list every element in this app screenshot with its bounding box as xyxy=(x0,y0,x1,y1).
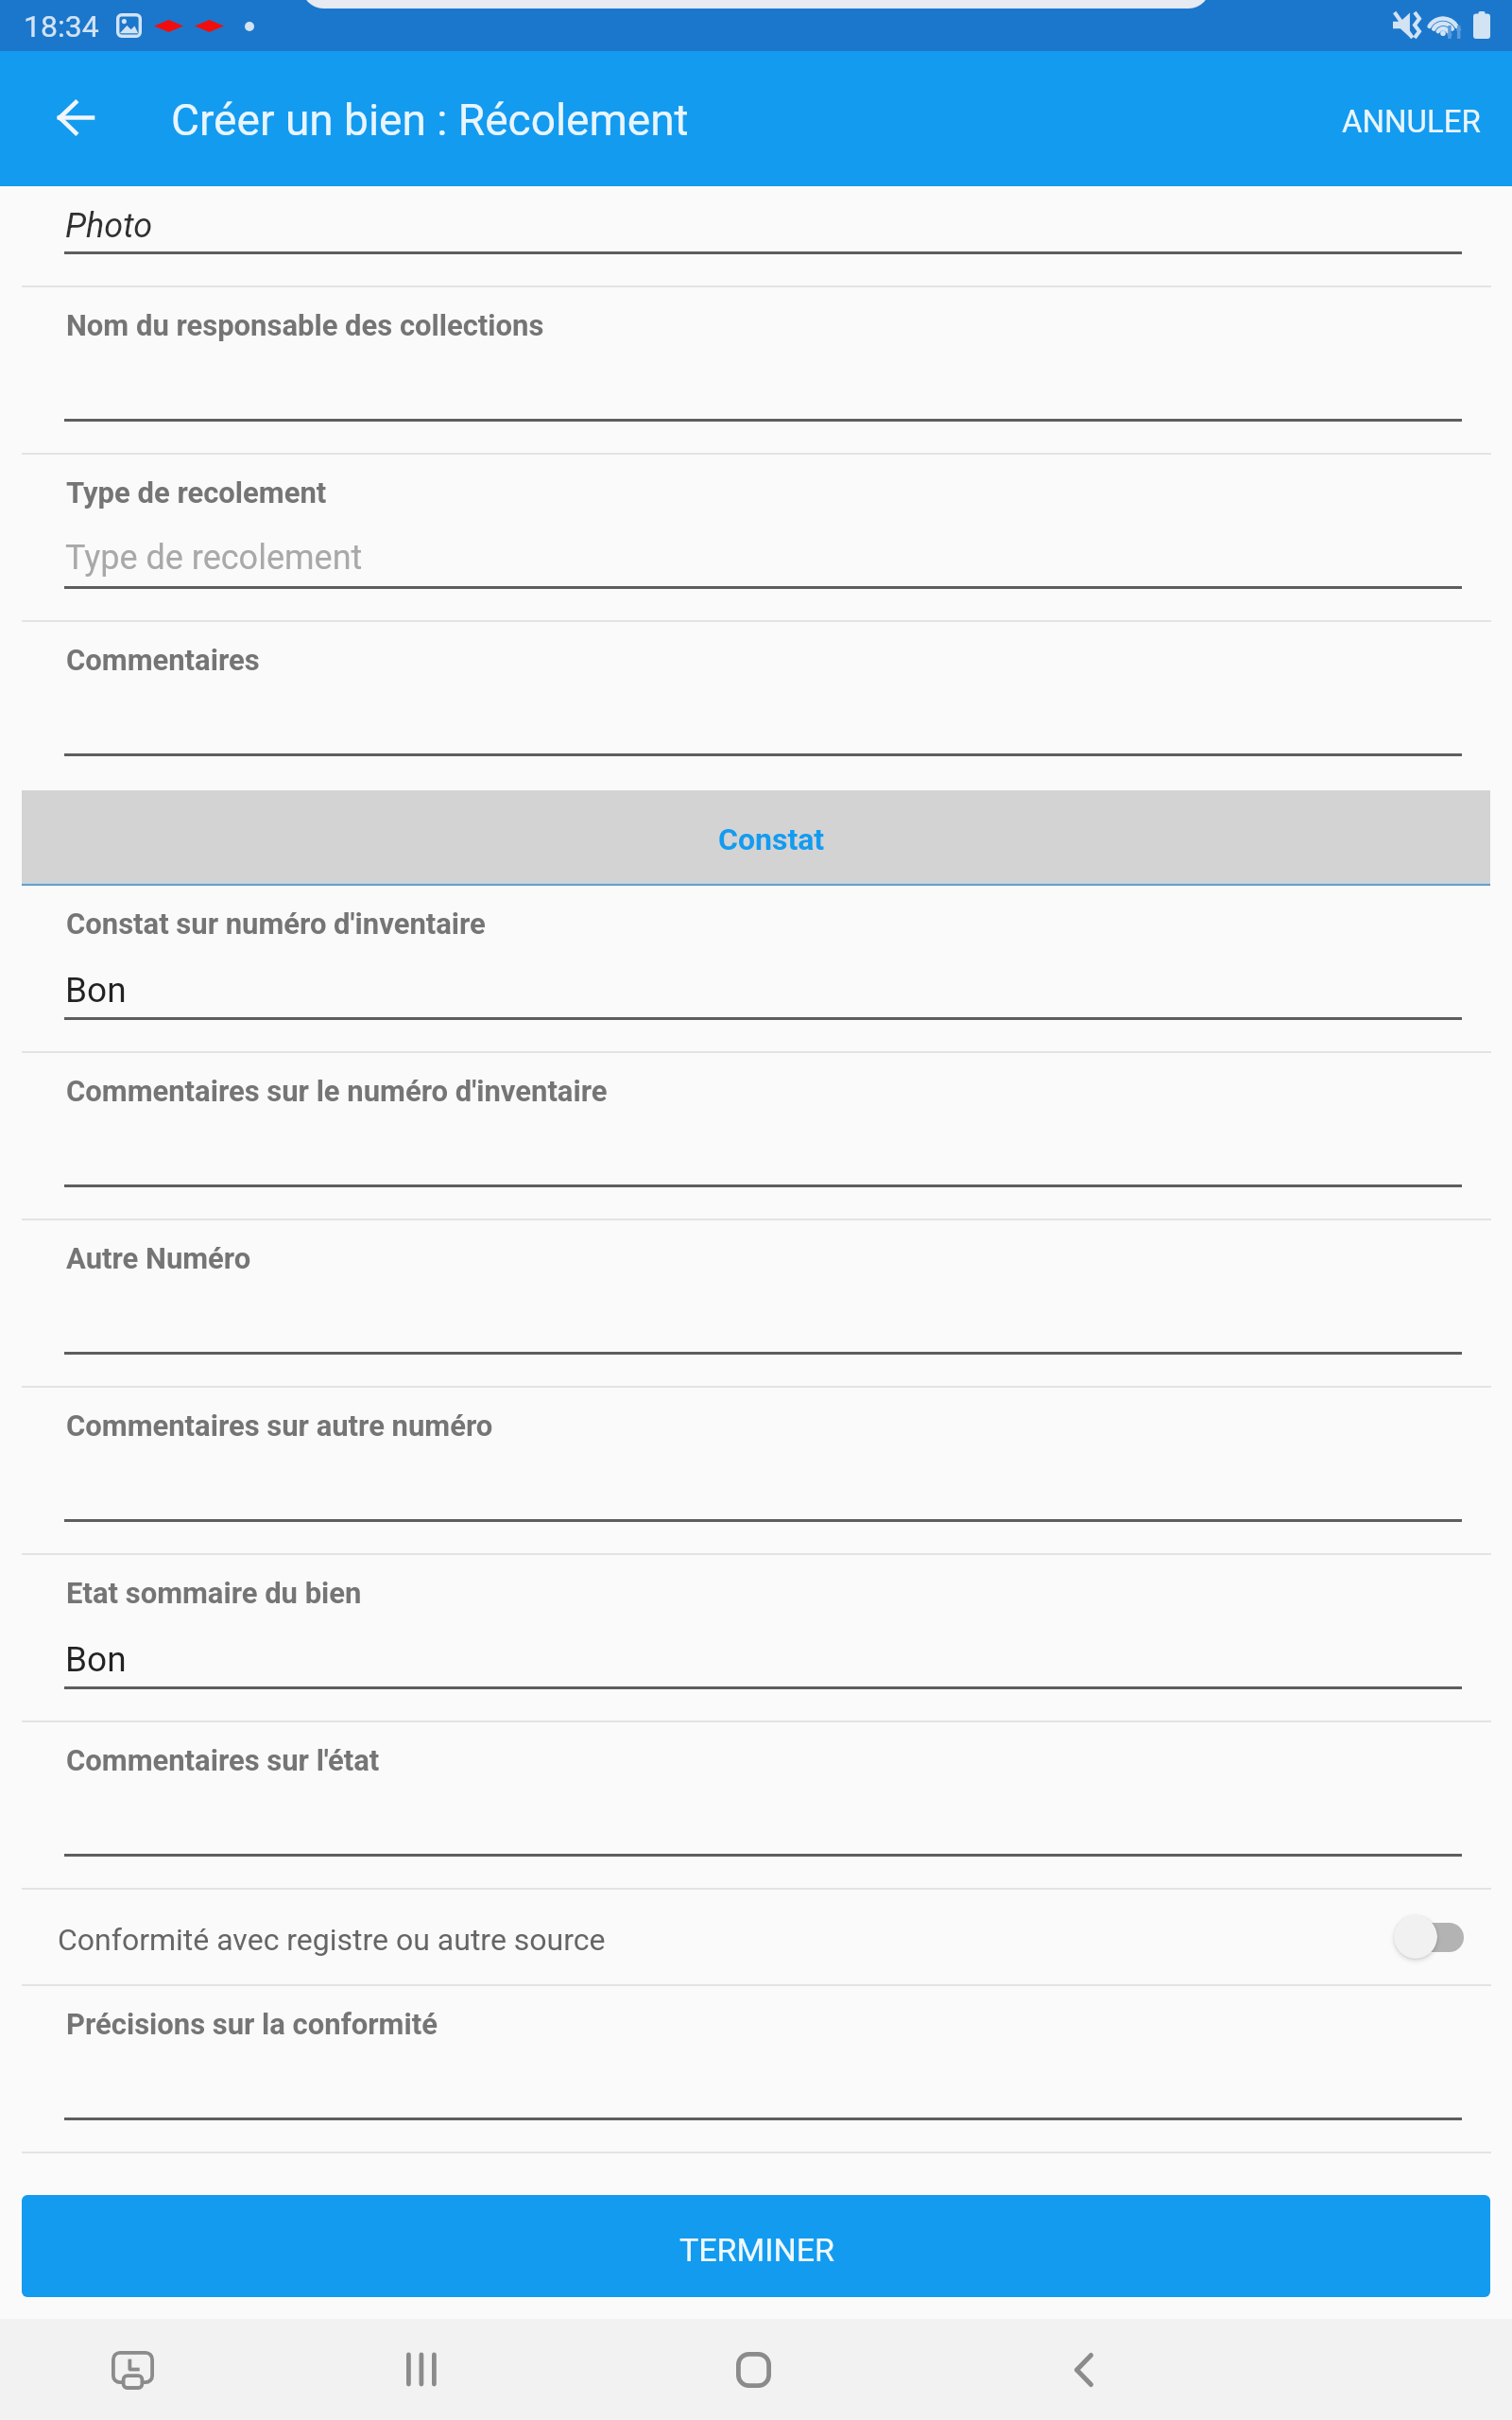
button[interactable]: Screenshot xyxy=(47,2319,217,2420)
staticText: Etat sommaire du bien xyxy=(66,1576,362,1610)
button[interactable]: Etat sommaire du bien xyxy=(0,1554,1512,1721)
staticText: TERMINER xyxy=(679,2231,835,2269)
staticText: Autre Numéro xyxy=(66,1241,251,1275)
button[interactable]: Constat xyxy=(22,790,1490,883)
button[interactable]: Back xyxy=(999,2319,1169,2420)
button[interactable]: Commentaires sur autre numéro xyxy=(0,1387,1512,1554)
button[interactable]: Commentaires sur le numéro d'inventaire xyxy=(0,1052,1512,1219)
staticText: Constat xyxy=(718,821,825,857)
staticText: Créer un bien : Récolement xyxy=(171,95,689,146)
staticText: Bon xyxy=(65,1639,127,1680)
button[interactable]: Type de recolement xyxy=(0,454,1512,621)
button[interactable]: Home xyxy=(668,2319,838,2420)
staticText: Photo xyxy=(65,206,153,246)
button[interactable]: Nom du responsable des collections xyxy=(0,286,1512,454)
staticText: Commentaires sur l'état xyxy=(66,1743,380,1777)
staticText: Type de recolement xyxy=(65,538,363,578)
staticText: 18:34 xyxy=(24,9,99,44)
staticText: Bon xyxy=(65,970,127,1011)
button[interactable]: Recent apps xyxy=(336,2319,507,2420)
staticText: ANNULER xyxy=(1342,103,1481,140)
button[interactable]: Constat sur numéro d'inventaire xyxy=(0,886,1512,1052)
button[interactable]: TERMINER xyxy=(22,2195,1490,2297)
button[interactable]: Photo xyxy=(0,186,1512,286)
button[interactable]: ANNULER xyxy=(1314,87,1484,149)
button[interactable]: Précisions sur la conformité xyxy=(0,1985,1512,2152)
button[interactable]: Autre Numéro xyxy=(0,1219,1512,1387)
button[interactable]: Conformité avec registre ou autre source xyxy=(0,1889,1512,1985)
staticText: Constat sur numéro d'inventaire xyxy=(66,907,486,941)
staticText: Conformité avec registre ou autre source xyxy=(58,1922,606,1958)
button[interactable]: Commentaires xyxy=(0,621,1512,790)
staticText: Commentaires sur le numéro d'inventaire xyxy=(66,1074,608,1108)
staticText: Type de recolement xyxy=(66,475,327,510)
staticText: Précisions sur la conformité xyxy=(66,2007,438,2041)
button[interactable]: Back xyxy=(32,75,117,160)
staticText: Commentaires sur autre numéro xyxy=(66,1409,493,1443)
staticText: Nom du responsable des collections xyxy=(66,308,544,342)
button[interactable]: Commentaires sur l'état xyxy=(0,1721,1512,1889)
staticText: Commentaires xyxy=(66,643,260,677)
